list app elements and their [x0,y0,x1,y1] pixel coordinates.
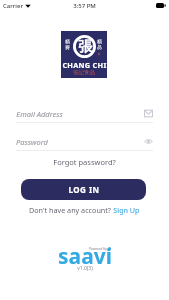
staticText: 張記食品 [73,69,95,76]
staticText: 精 [97,39,102,45]
staticText: 賽 [65,45,70,51]
staticText: saavi [58,242,112,271]
staticText: Password [16,137,48,147]
staticText: Forgot password? [53,157,116,167]
staticText: Email Address [16,109,63,119]
staticText: 3:57 PM [73,2,96,10]
staticText: CHANG CHI [62,60,107,70]
button[interactable]: LOG IN [21,179,146,200]
staticText: Carrier [3,2,23,10]
button[interactable]: Forgot password? [0,155,169,169]
button[interactable]: Sign Up [111,205,140,215]
staticText: Powered by [89,246,107,251]
staticText: Sign Up [111,205,140,215]
staticText: v1.0(3) [77,265,93,272]
other: Email [144,109,153,118]
other: Show password [144,137,153,146]
staticText: Don't have any account? [29,205,111,215]
staticText: 精 [65,39,70,45]
staticText: LOG IN [68,184,100,195]
staticText: 品 [97,45,102,51]
staticText: 張 [78,38,92,56]
